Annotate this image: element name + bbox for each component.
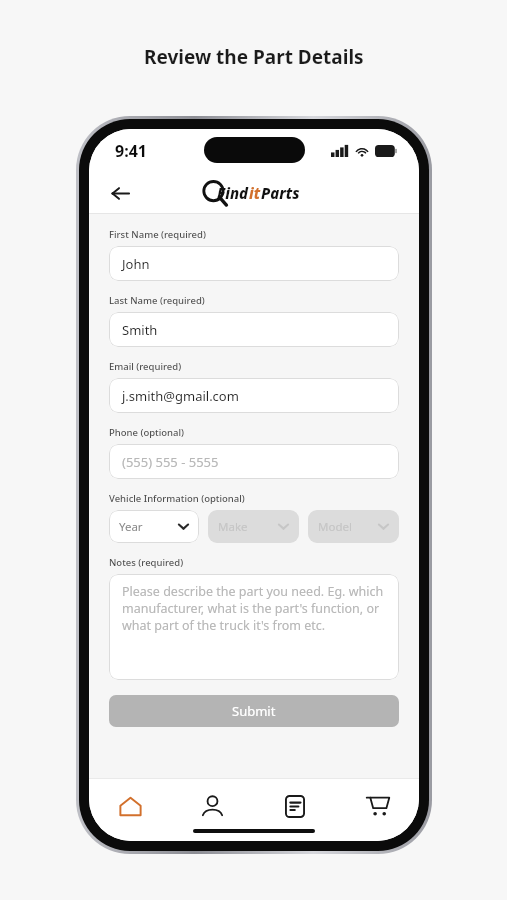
button[interactable]: Year [109, 510, 199, 543]
staticText: Make [218, 519, 248, 535]
staticText: Review the Part Details [144, 44, 364, 70]
staticText: Smith [122, 321, 158, 339]
staticText: Submit [232, 702, 276, 720]
staticText: Find [217, 183, 249, 203]
staticText: Model [318, 519, 352, 535]
button[interactable]: Cart [336, 786, 419, 826]
staticText: Vehicle Information (optional) [109, 492, 245, 505]
button[interactable]: Submit [109, 695, 399, 727]
staticText: Notes (required) [109, 556, 184, 569]
button[interactable]: (555) 555 - 5555 [109, 444, 399, 479]
button[interactable]: John [109, 246, 399, 281]
staticText: Last Name (required) [109, 294, 205, 307]
button[interactable]: Make [208, 510, 299, 543]
staticText: Year [119, 519, 143, 535]
button[interactable]: Orders [253, 786, 336, 826]
button[interactable]: Back [103, 176, 137, 210]
button[interactable]: j.smith@gmail.com [109, 378, 399, 413]
button[interactable]: Model [308, 510, 399, 543]
staticText: First Name (required) [109, 228, 206, 241]
button[interactable]: Account [171, 786, 253, 826]
staticText: j.smith@gmail.com [122, 387, 239, 405]
staticText: Please describe the part you need. Eg. w… [122, 583, 386, 634]
staticText: (555) 555 - 5555 [122, 453, 219, 471]
staticText: Parts [261, 183, 300, 203]
staticText: Email (required) [109, 360, 182, 373]
button[interactable]: Home [89, 786, 171, 826]
staticText: Phone (optional) [109, 426, 185, 439]
button[interactable]: Please describe the part you need. Eg. w… [109, 574, 399, 680]
staticText: 9:41 [115, 140, 147, 162]
button[interactable]: Smith [109, 312, 399, 347]
staticText: it [249, 183, 261, 203]
staticText: John [122, 255, 150, 273]
